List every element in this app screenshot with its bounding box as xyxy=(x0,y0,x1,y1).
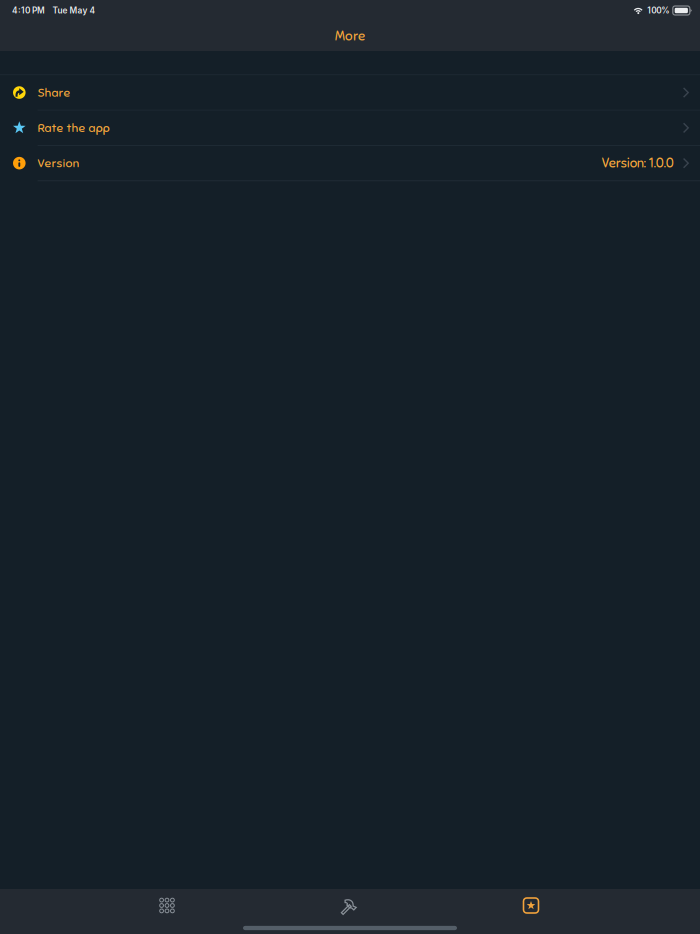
button[interactable]: Version xyxy=(0,146,700,181)
staticText: Tue May 4 xyxy=(52,5,95,16)
button[interactable]: Share xyxy=(0,75,700,111)
button[interactable]: Apps xyxy=(144,889,190,922)
staticText: 4:10 PM xyxy=(12,5,45,16)
staticText: Version: 1.0.0 xyxy=(602,155,674,171)
button[interactable]: Rate the app xyxy=(0,111,700,146)
staticText: More xyxy=(335,28,365,44)
staticText: Version xyxy=(38,155,80,171)
button[interactable]: More xyxy=(508,889,554,922)
staticText: Share xyxy=(38,85,71,100)
staticText: Rate the app xyxy=(38,120,110,135)
staticText: 100% xyxy=(647,5,669,16)
button[interactable]: Tools xyxy=(326,889,372,922)
